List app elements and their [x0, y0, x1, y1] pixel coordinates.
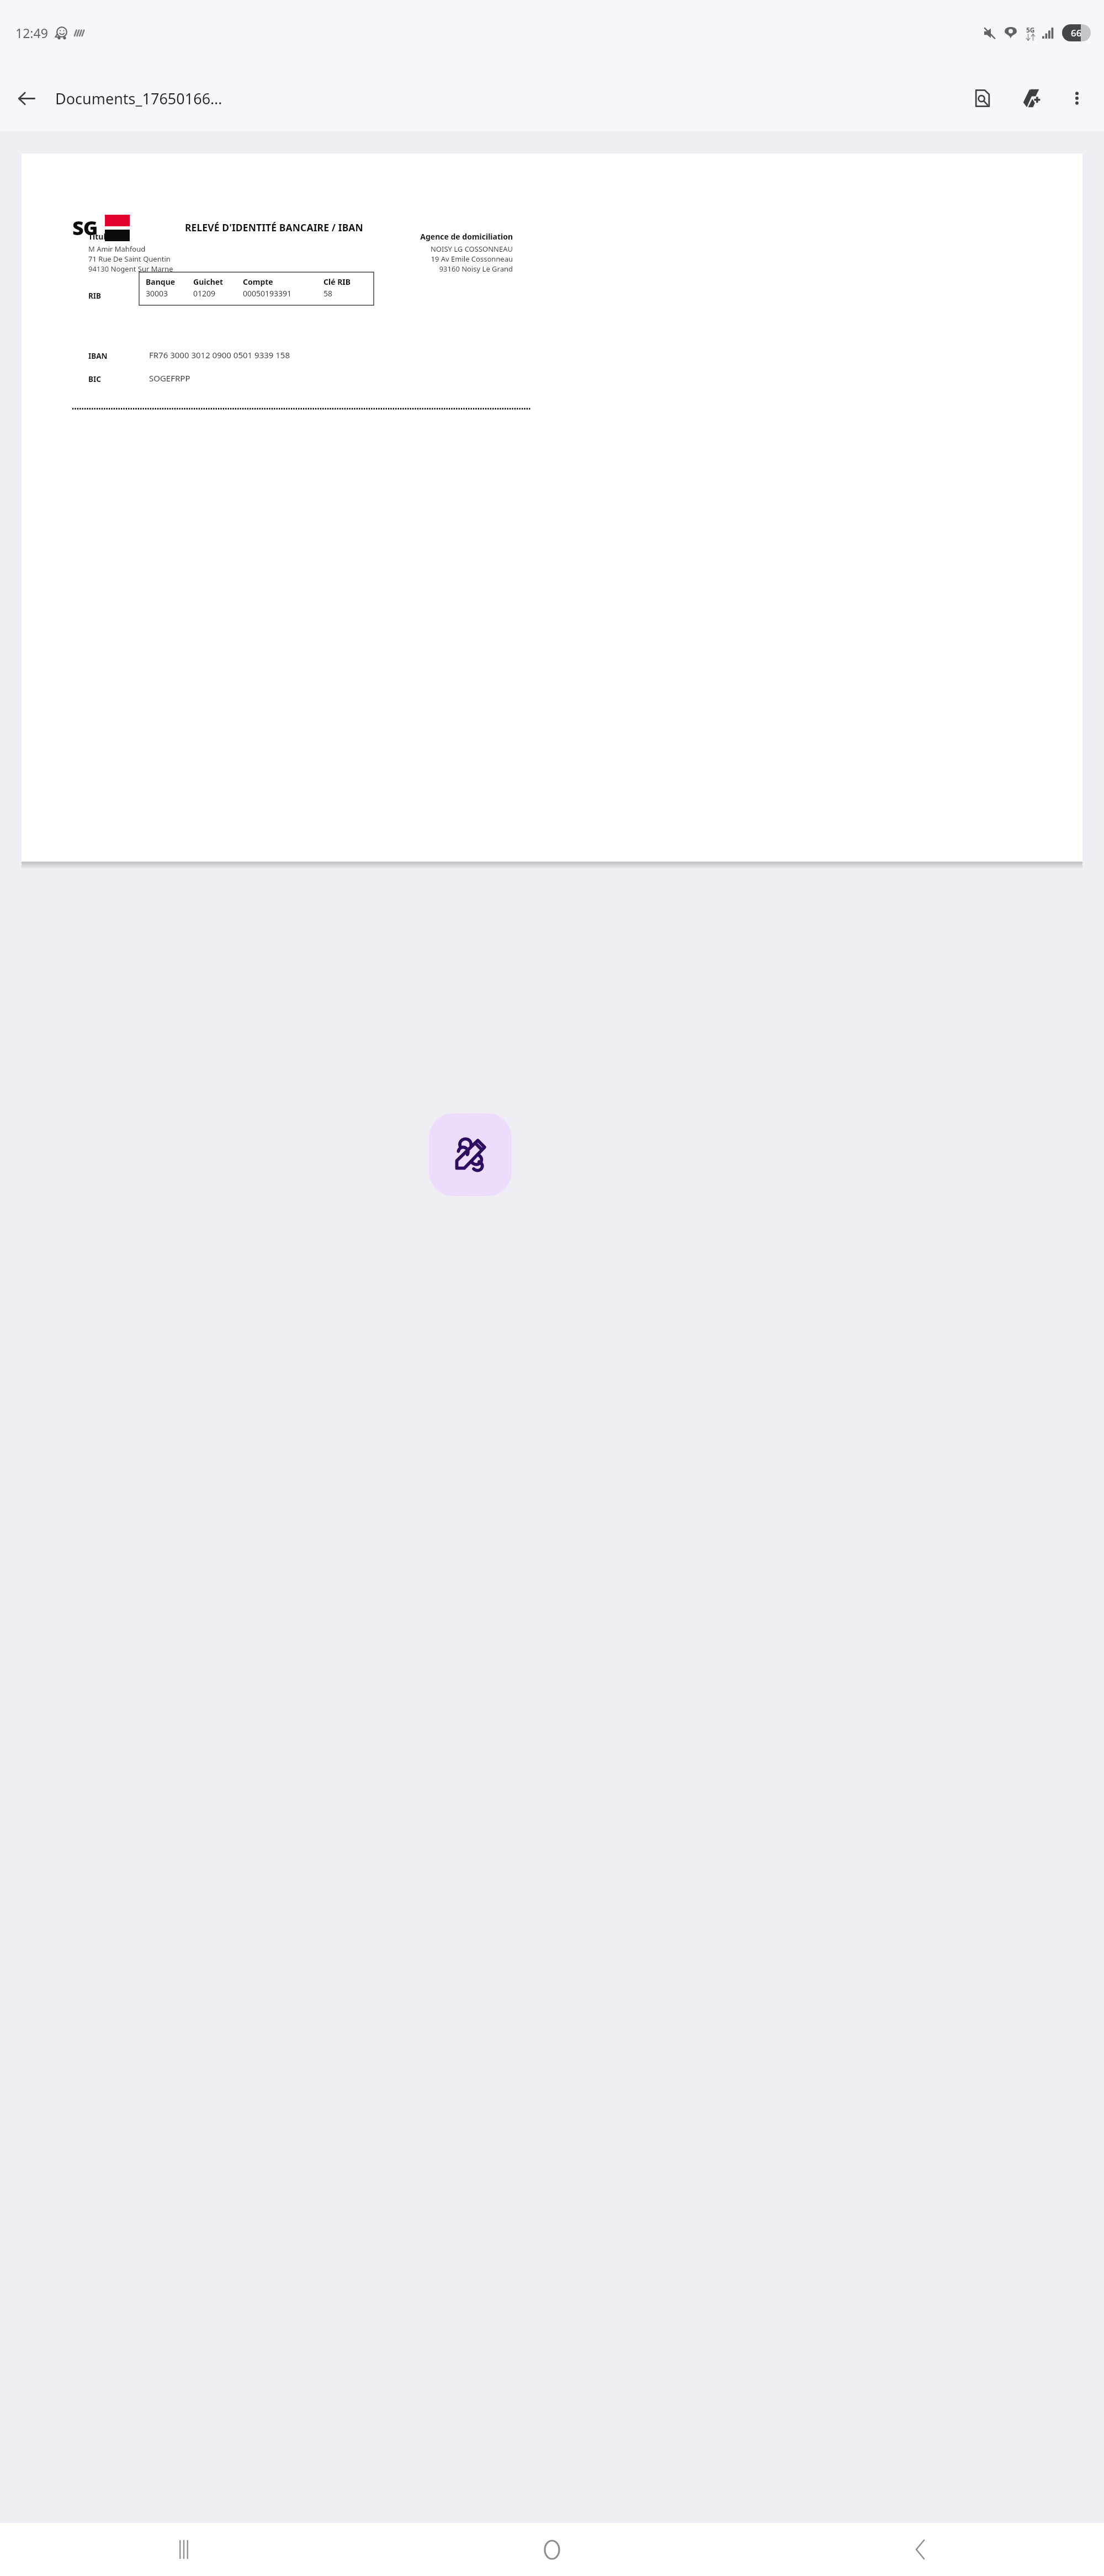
staticText: SOGEFRPP	[149, 373, 190, 384]
staticText: 30003	[146, 288, 168, 299]
staticText: 5G	[1026, 25, 1035, 34]
staticText: Banque	[146, 277, 176, 287]
staticText: 58	[323, 288, 333, 299]
staticText: 19 Av Emile Cossonneau	[431, 254, 513, 264]
staticText: 01209	[193, 288, 216, 299]
other: Silent mode	[983, 26, 996, 40]
staticText: M Amir Mahfoud	[88, 244, 146, 254]
button[interactable]: Recent apps	[142, 2523, 225, 2576]
button[interactable]: Annotate	[429, 1113, 512, 1196]
button[interactable]: Find in document	[958, 74, 1007, 123]
button[interactable]: Home	[511, 2523, 593, 2576]
button[interactable]: Back	[0, 72, 53, 125]
staticText: 66	[1071, 26, 1082, 39]
staticText: 12:49	[15, 24, 48, 41]
staticText: Clé RIB	[323, 277, 351, 287]
staticText: 93160 Noisy Le Grand	[439, 264, 513, 274]
staticText: 71 Rue De Saint Quentin	[88, 254, 171, 264]
staticText: RELEVÉ D'IDENTITÉ BANCAIRE / IBAN	[185, 221, 363, 234]
staticText: IBAN	[88, 351, 108, 361]
staticText: FR76 3000 3012 0900 0501 9339 158	[149, 349, 290, 360]
button[interactable]: More options	[1055, 77, 1098, 120]
staticText: NOISY LG COSSONNEAU	[430, 244, 513, 254]
staticText: BIC	[88, 374, 101, 384]
staticText: Guichet	[193, 277, 224, 287]
staticText: SG	[72, 214, 98, 241]
staticText: 00050193391	[243, 288, 292, 299]
other: Location	[1005, 27, 1017, 39]
staticText: Compte	[243, 277, 273, 287]
staticText: Titulaire	[88, 231, 121, 242]
button[interactable]: Save to Drive	[1007, 74, 1055, 123]
staticText: RIB	[88, 291, 102, 301]
staticText: 94130 Nogent Sur Marne	[88, 264, 173, 274]
button[interactable]: Back	[879, 2523, 962, 2576]
staticText: Agence de domiciliation	[420, 231, 513, 242]
staticText: Documents_17650166…	[55, 88, 958, 109]
